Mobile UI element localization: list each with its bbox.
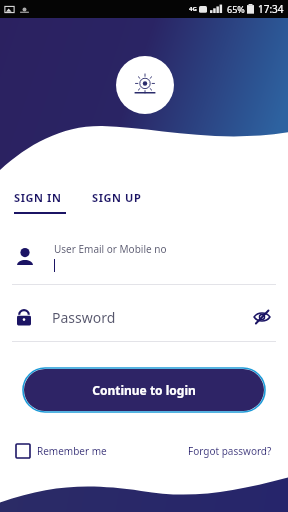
staticText: Remember me (37, 444, 107, 458)
other: Password (14, 307, 34, 327)
staticText: Password (52, 308, 116, 327)
staticText: SIGN UP (92, 190, 142, 205)
button[interactable]: SIGN UP (92, 190, 142, 205)
button[interactable]: Remember me (16, 444, 107, 458)
staticText: Continue to login (92, 382, 196, 398)
button[interactable]: Show password (250, 305, 274, 329)
button[interactable]: SIGN IN (14, 190, 70, 214)
staticText: 4G (189, 5, 197, 13)
staticText: SIGN IN (14, 190, 62, 205)
button[interactable]: Continue to login (24, 369, 264, 411)
button[interactable]: User (14, 242, 274, 272)
button[interactable]: Password (14, 305, 274, 329)
staticText: 17:34 (258, 2, 284, 16)
other: User (14, 246, 36, 268)
staticText: User Email or Mobile no (54, 242, 167, 256)
staticText: Forgot password? (188, 444, 272, 458)
button[interactable]: Forgot password? (188, 444, 272, 458)
staticText: 65% (227, 3, 245, 15)
